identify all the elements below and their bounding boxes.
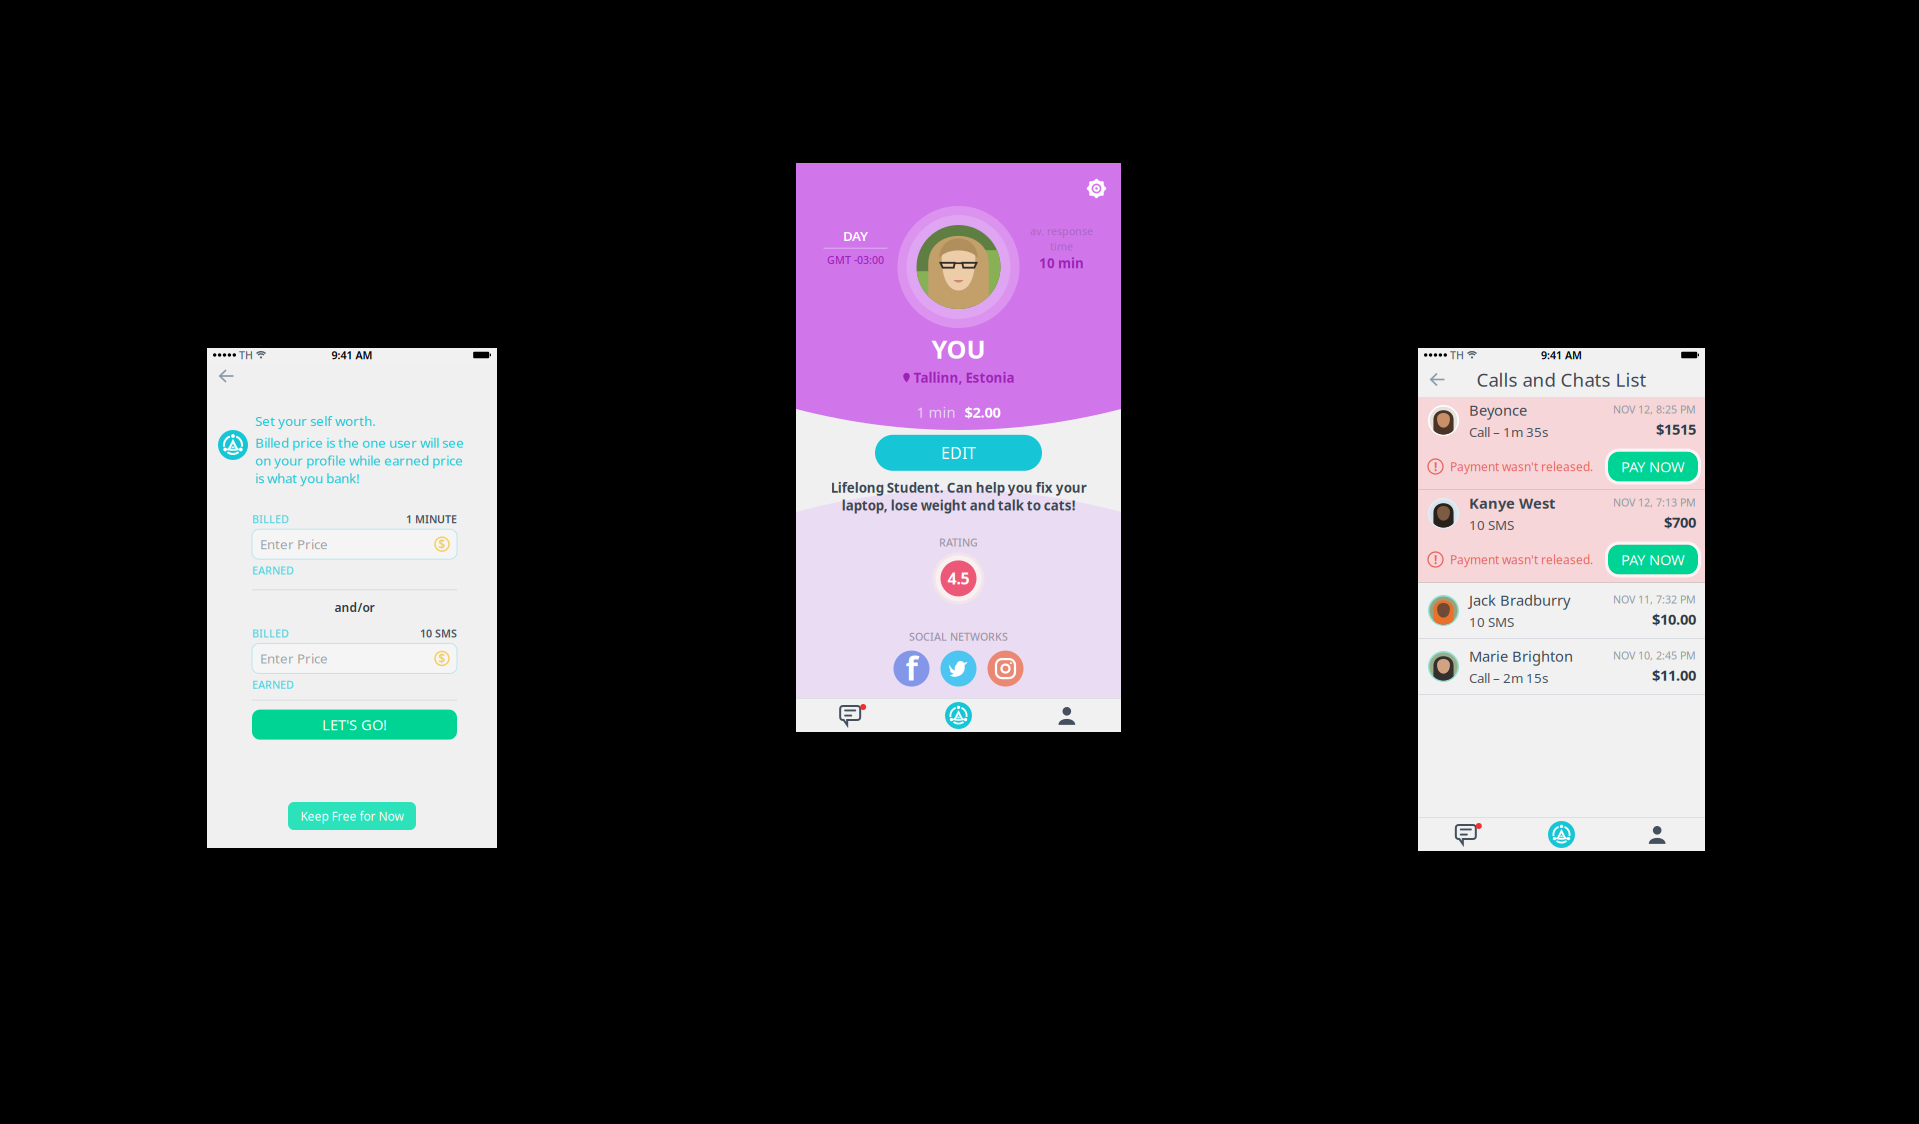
staticText: $ [438, 536, 445, 552]
staticText: EARNED [252, 677, 294, 692]
staticText: PAY NOW [1621, 457, 1685, 476]
staticText: $ [438, 650, 445, 666]
button[interactable]: Beyonce [1418, 397, 1705, 489]
button[interactable]: Kanye West [1418, 490, 1705, 582]
staticText: SOCIAL NETWORKS [909, 629, 1008, 644]
button[interactable]: Enter Price [252, 529, 457, 559]
staticText: LET'S GO! [322, 715, 387, 734]
staticText: $700 [1664, 512, 1696, 532]
staticText: Call – 2m 15s [1469, 669, 1548, 687]
button[interactable]: Twitter [940, 651, 976, 687]
button[interactable]: Home [1514, 818, 1609, 851]
staticText: NOV 11, 7:32 PM [1613, 592, 1696, 606]
button[interactable]: Jack Bradburry [1418, 583, 1705, 638]
staticText: PAY NOW [1621, 550, 1685, 569]
staticText: Payment wasn't released. [1450, 551, 1593, 567]
staticText: BILLED [252, 626, 289, 640]
staticText: Calls and Chats List [1476, 367, 1646, 392]
staticText: $11.00 [1652, 665, 1696, 685]
button[interactable]: Enter Price [252, 643, 457, 673]
staticText: RATING [939, 535, 978, 549]
staticText: 9:41 AM [331, 348, 372, 362]
staticText: $10.00 [1652, 609, 1696, 629]
staticText: Jack Bradburry [1469, 590, 1570, 610]
staticText: Lifelong Student. Can help you fix your … [830, 479, 1086, 514]
staticText: TH [239, 348, 253, 362]
staticText: TH [1450, 348, 1464, 362]
staticText: 10 SMS [420, 626, 457, 640]
staticText: $1515 [1656, 419, 1696, 439]
staticText: 4.5 [947, 568, 969, 589]
button[interactable]: Chats [796, 699, 904, 732]
staticText: Marie Brighton [1469, 646, 1573, 666]
staticText: Payment wasn't released. [1450, 458, 1593, 474]
staticText: 1 MINUTE [406, 512, 457, 526]
staticText: Call – 1m 35s [1469, 423, 1548, 441]
button[interactable]: Home [904, 699, 1013, 732]
button[interactable]: Back [1418, 364, 1456, 394]
staticText: NOV 12, 8:25 PM [1613, 402, 1696, 416]
staticText: 1 min [916, 402, 955, 422]
staticText: and/or [334, 599, 374, 615]
staticText: BILLED [252, 512, 289, 526]
button[interactable]: EDIT [875, 435, 1042, 471]
staticText: NOV 12, 7:13 PM [1613, 495, 1696, 509]
staticText: 10 SMS [1469, 613, 1514, 631]
staticText: Beyonce [1469, 400, 1527, 420]
staticText: Keep Free for Now [300, 808, 403, 824]
button[interactable]: Settings [1080, 172, 1113, 205]
button[interactable]: Back [207, 362, 245, 390]
button[interactable]: Instagram [987, 651, 1023, 687]
staticText: Enter Price [260, 535, 328, 553]
staticText: YOU [931, 332, 985, 366]
staticText: NOV 10, 2:45 PM [1613, 648, 1696, 662]
staticText: Billed price is the one user will see on… [255, 434, 464, 487]
button[interactable]: Keep Free for Now [288, 802, 416, 830]
staticText: Kanye West [1469, 493, 1555, 513]
staticText: ! [1434, 551, 1437, 567]
staticText: time [1050, 239, 1073, 253]
button[interactable]: Profile [1609, 818, 1705, 851]
staticText: Tallinn, Estonia [913, 369, 1014, 386]
button[interactable]: Marie Brighton [1418, 639, 1705, 694]
staticText: GMT -03:00 [827, 253, 884, 267]
staticText: EDIT [941, 442, 976, 463]
button[interactable]: Profile [1013, 699, 1121, 732]
button[interactable]: Facebook [893, 651, 929, 687]
staticText: 9:41 AM [1541, 348, 1582, 362]
button[interactable]: Chats [1418, 818, 1514, 851]
staticText: $2.00 [964, 402, 1000, 422]
staticText: 10 SMS [1469, 516, 1514, 534]
staticText: f [905, 647, 917, 689]
staticText: EARNED [252, 563, 294, 577]
staticText: 10 min [1039, 254, 1084, 272]
button[interactable]: LET'S GO! [252, 710, 457, 740]
staticText: DAY [843, 227, 868, 245]
staticText: Enter Price [260, 650, 328, 667]
staticText: ! [1434, 458, 1437, 474]
staticText: av. response [1030, 224, 1093, 238]
staticText: Set your self worth. [255, 412, 376, 430]
